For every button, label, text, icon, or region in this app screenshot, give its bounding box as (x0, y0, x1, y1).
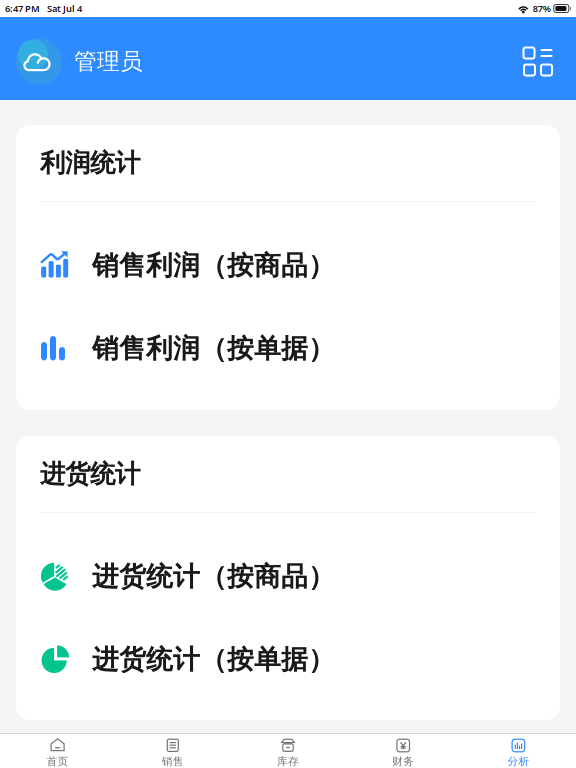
staticText: 进货统计 (40, 458, 140, 489)
button[interactable]: 进货统计（按商品） (16, 535, 560, 618)
button[interactable]: 进货统计（按单据） (16, 618, 560, 701)
button[interactable]: 分析 (461, 738, 576, 768)
staticText: 6:47 PM (5, 2, 40, 15)
staticText: Sat Jul 4 (47, 2, 82, 15)
button[interactable]: 首页 (0, 738, 115, 768)
button[interactable]: More (516, 39, 560, 83)
staticText: 销售 (162, 755, 184, 768)
button[interactable]: 销售 (115, 738, 230, 768)
staticText: 库存 (277, 755, 299, 768)
button[interactable]: 库存 (230, 738, 346, 768)
staticText: 87% (533, 2, 551, 15)
button[interactable]: 财务 (346, 738, 461, 768)
staticText: 销售利润（按商品） (92, 249, 335, 282)
staticText: 进货统计（按商品） (92, 560, 335, 593)
staticText: 销售利润（按单据） (92, 332, 335, 365)
button[interactable]: 销售利润（按商品） (16, 224, 560, 307)
staticText: 利润统计 (40, 147, 140, 178)
staticText: 财务 (392, 755, 414, 768)
staticText: 管理员 (74, 48, 143, 75)
button[interactable]: 销售利润（按单据） (16, 307, 560, 390)
staticText: 进货统计（按单据） (92, 643, 335, 676)
staticText: 首页 (47, 755, 69, 768)
staticText: 分析 (507, 755, 529, 768)
